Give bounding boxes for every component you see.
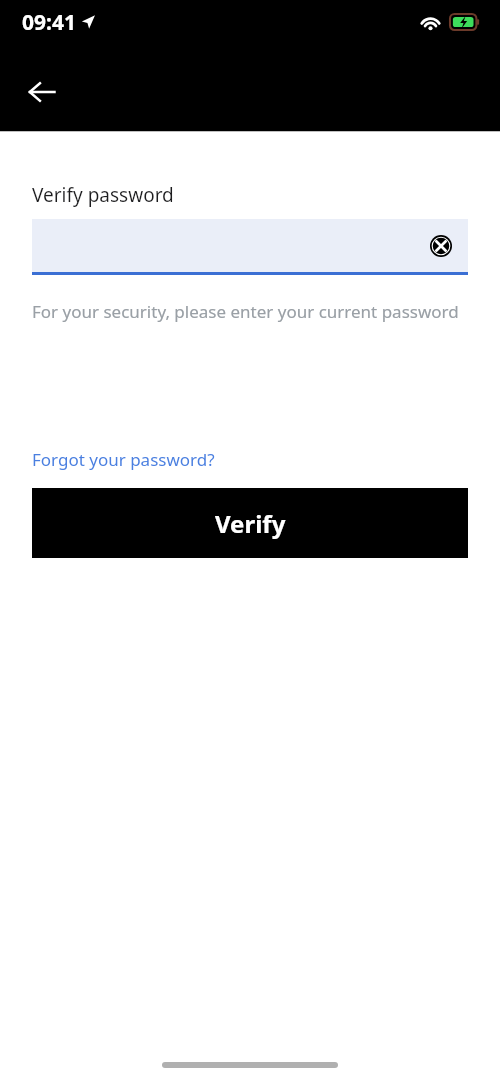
staticText: Forgot your password? bbox=[32, 448, 215, 471]
staticText: For your security, please enter your cur… bbox=[32, 300, 468, 323]
button[interactable]: Back bbox=[16, 66, 68, 118]
staticText: Verify bbox=[215, 507, 286, 540]
button[interactable]: Clear text bbox=[32, 219, 468, 275]
staticText: 09:41 bbox=[22, 8, 76, 37]
button[interactable]: Clear text bbox=[424, 229, 458, 263]
staticText: Verify password bbox=[32, 182, 174, 208]
button[interactable]: Forgot your password? bbox=[32, 448, 215, 471]
button[interactable]: Verify bbox=[32, 488, 468, 558]
